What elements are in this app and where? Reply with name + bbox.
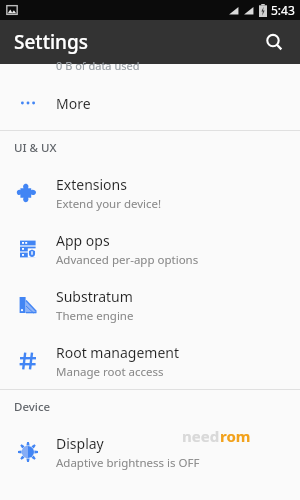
- staticText: need: [182, 426, 220, 446]
- staticText: Device: [14, 399, 51, 415]
- staticText: Display: [56, 434, 104, 453]
- staticText: Settings: [14, 29, 88, 55]
- button[interactable]: Extensions: [0, 165, 300, 221]
- button[interactable]: Substratum: [0, 277, 300, 333]
- staticText: 5:43: [271, 2, 295, 18]
- staticText: Substratum: [56, 287, 133, 306]
- staticText: UI & UX: [14, 140, 57, 156]
- staticText: More: [56, 94, 91, 113]
- button[interactable]: Display: [0, 424, 300, 480]
- button[interactable]: More: [0, 76, 300, 130]
- staticText: Theme engine: [56, 308, 134, 324]
- staticText: Advanced per-app options: [56, 252, 199, 268]
- staticText: rom: [220, 426, 251, 446]
- button[interactable]: Root management: [0, 333, 300, 389]
- staticText: 0 B of data used: [56, 58, 140, 70]
- staticText: App ops: [56, 231, 110, 250]
- staticText: Root management: [56, 343, 179, 362]
- staticText: Manage root access: [56, 364, 164, 380]
- button[interactable]: Search: [254, 22, 294, 62]
- button[interactable]: 0 B of data used: [0, 64, 300, 76]
- staticText: Adaptive brightness is OFF: [56, 455, 200, 471]
- staticText: Extend your device!: [56, 196, 162, 212]
- button[interactable]: App ops: [0, 221, 300, 277]
- staticText: Extensions: [56, 175, 127, 194]
